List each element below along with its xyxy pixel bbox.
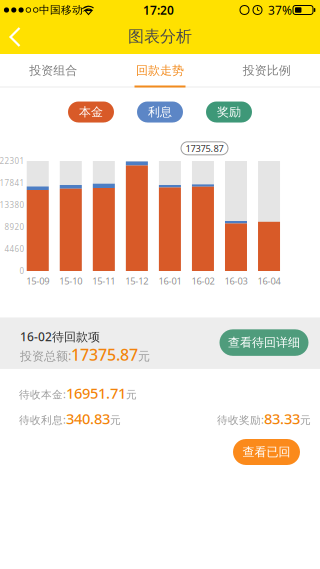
staticText: 中国移动 bbox=[39, 3, 83, 16]
staticText: 22301 bbox=[0, 156, 24, 166]
button[interactable]: 查看待回详细 bbox=[219, 329, 308, 356]
staticText: 投资总额: bbox=[20, 348, 71, 364]
button[interactable]: 投资组合 bbox=[0, 54, 106, 87]
staticText: 投资组合 bbox=[29, 63, 77, 78]
staticText: 16-02待回款项 bbox=[20, 328, 100, 344]
staticText: 利息 bbox=[148, 105, 172, 119]
staticText: 83.33 bbox=[264, 409, 300, 428]
staticText: 查看已回 bbox=[242, 445, 290, 459]
staticText: 8920 bbox=[4, 222, 24, 232]
staticText: 340.83 bbox=[66, 409, 110, 428]
staticText: 17841 bbox=[0, 178, 24, 188]
button[interactable]: 回款走势 bbox=[107, 54, 213, 87]
staticText: 15-09 bbox=[26, 275, 49, 287]
staticText: 15-12 bbox=[125, 275, 148, 287]
staticText: 回款走势 bbox=[136, 63, 184, 78]
staticText: 15-11 bbox=[92, 275, 115, 287]
button[interactable]: 查看已回 bbox=[233, 439, 300, 465]
button[interactable]: Back bbox=[5, 23, 31, 50]
staticText: 16951.71 bbox=[66, 383, 126, 403]
staticText: 本金 bbox=[79, 105, 103, 119]
staticText: 0 bbox=[19, 266, 24, 276]
staticText: 投资比例 bbox=[243, 63, 291, 78]
staticText: 17:20 bbox=[143, 2, 174, 18]
staticText: 16-01 bbox=[158, 275, 181, 287]
staticText: 元 bbox=[126, 388, 137, 401]
button[interactable]: 利息 bbox=[137, 101, 183, 122]
staticText: 查看待回详细 bbox=[228, 335, 300, 350]
button[interactable]: 奖励 bbox=[206, 101, 252, 122]
staticText: 待收本金: bbox=[19, 387, 66, 401]
staticText: 4460 bbox=[4, 244, 24, 254]
staticText: 元 bbox=[138, 349, 150, 364]
button[interactable]: 投资比例 bbox=[214, 54, 320, 87]
staticText: 16-02 bbox=[191, 275, 214, 287]
button[interactable]: 本金 bbox=[68, 101, 114, 122]
staticText: 元 bbox=[110, 414, 121, 427]
staticText: 待收利息: bbox=[19, 413, 66, 427]
staticText: 待收奖励: bbox=[217, 413, 264, 427]
staticText: 16-04 bbox=[257, 275, 280, 287]
staticText: 16-03 bbox=[224, 275, 247, 287]
staticText: 37% bbox=[268, 2, 292, 18]
staticText: 13380 bbox=[0, 200, 24, 210]
staticText: 17375.87 bbox=[71, 344, 138, 365]
staticText: 图表分析 bbox=[128, 27, 192, 46]
staticText: 奖励 bbox=[217, 105, 241, 119]
staticText: 元 bbox=[300, 414, 311, 427]
staticText: 15-10 bbox=[59, 275, 82, 287]
staticText: 17375.87 bbox=[185, 142, 223, 154]
